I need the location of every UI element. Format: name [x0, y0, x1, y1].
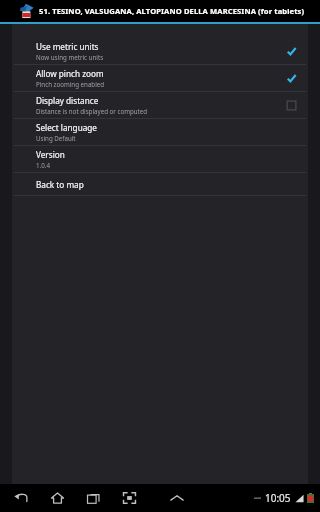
button[interactable]: Back [8, 485, 34, 511]
staticText: Pinch zooming enabled [36, 80, 105, 88]
button[interactable]: Checked [286, 46, 297, 57]
button[interactable]: Unchecked [286, 100, 297, 111]
button[interactable]: Use metric units [12, 38, 308, 64]
button[interactable]: Screenshot [116, 485, 142, 511]
staticText: Distance is not displayed or computed [36, 107, 148, 115]
button[interactable]: Allow pinch zoom [12, 65, 308, 91]
staticText: Version [36, 149, 65, 160]
button[interactable]: Recent apps [80, 485, 106, 511]
button[interactable]: Home [44, 485, 70, 511]
staticText: Using Default [36, 134, 76, 142]
staticText: Select language [36, 122, 97, 133]
staticText: 10:05 [265, 491, 291, 505]
staticText: 51. TESINO, VALSUGANA, ALTOPIANO DELLA M… [39, 6, 305, 16]
button[interactable]: Version [12, 146, 308, 172]
button[interactable]: Back to map [12, 173, 308, 195]
staticText: Back to map [36, 179, 84, 190]
button[interactable]: Select language [12, 119, 308, 145]
button[interactable]: Checked [286, 73, 297, 84]
staticText: 1.0.4 [36, 161, 50, 169]
button[interactable]: Expand [164, 485, 190, 511]
button[interactable]: Display distance [12, 92, 308, 118]
staticText: Allow pinch zoom [36, 68, 104, 79]
staticText: Use metric units [36, 41, 99, 52]
staticText: Now using metric units [36, 53, 104, 61]
staticText: Display distance [36, 95, 99, 106]
